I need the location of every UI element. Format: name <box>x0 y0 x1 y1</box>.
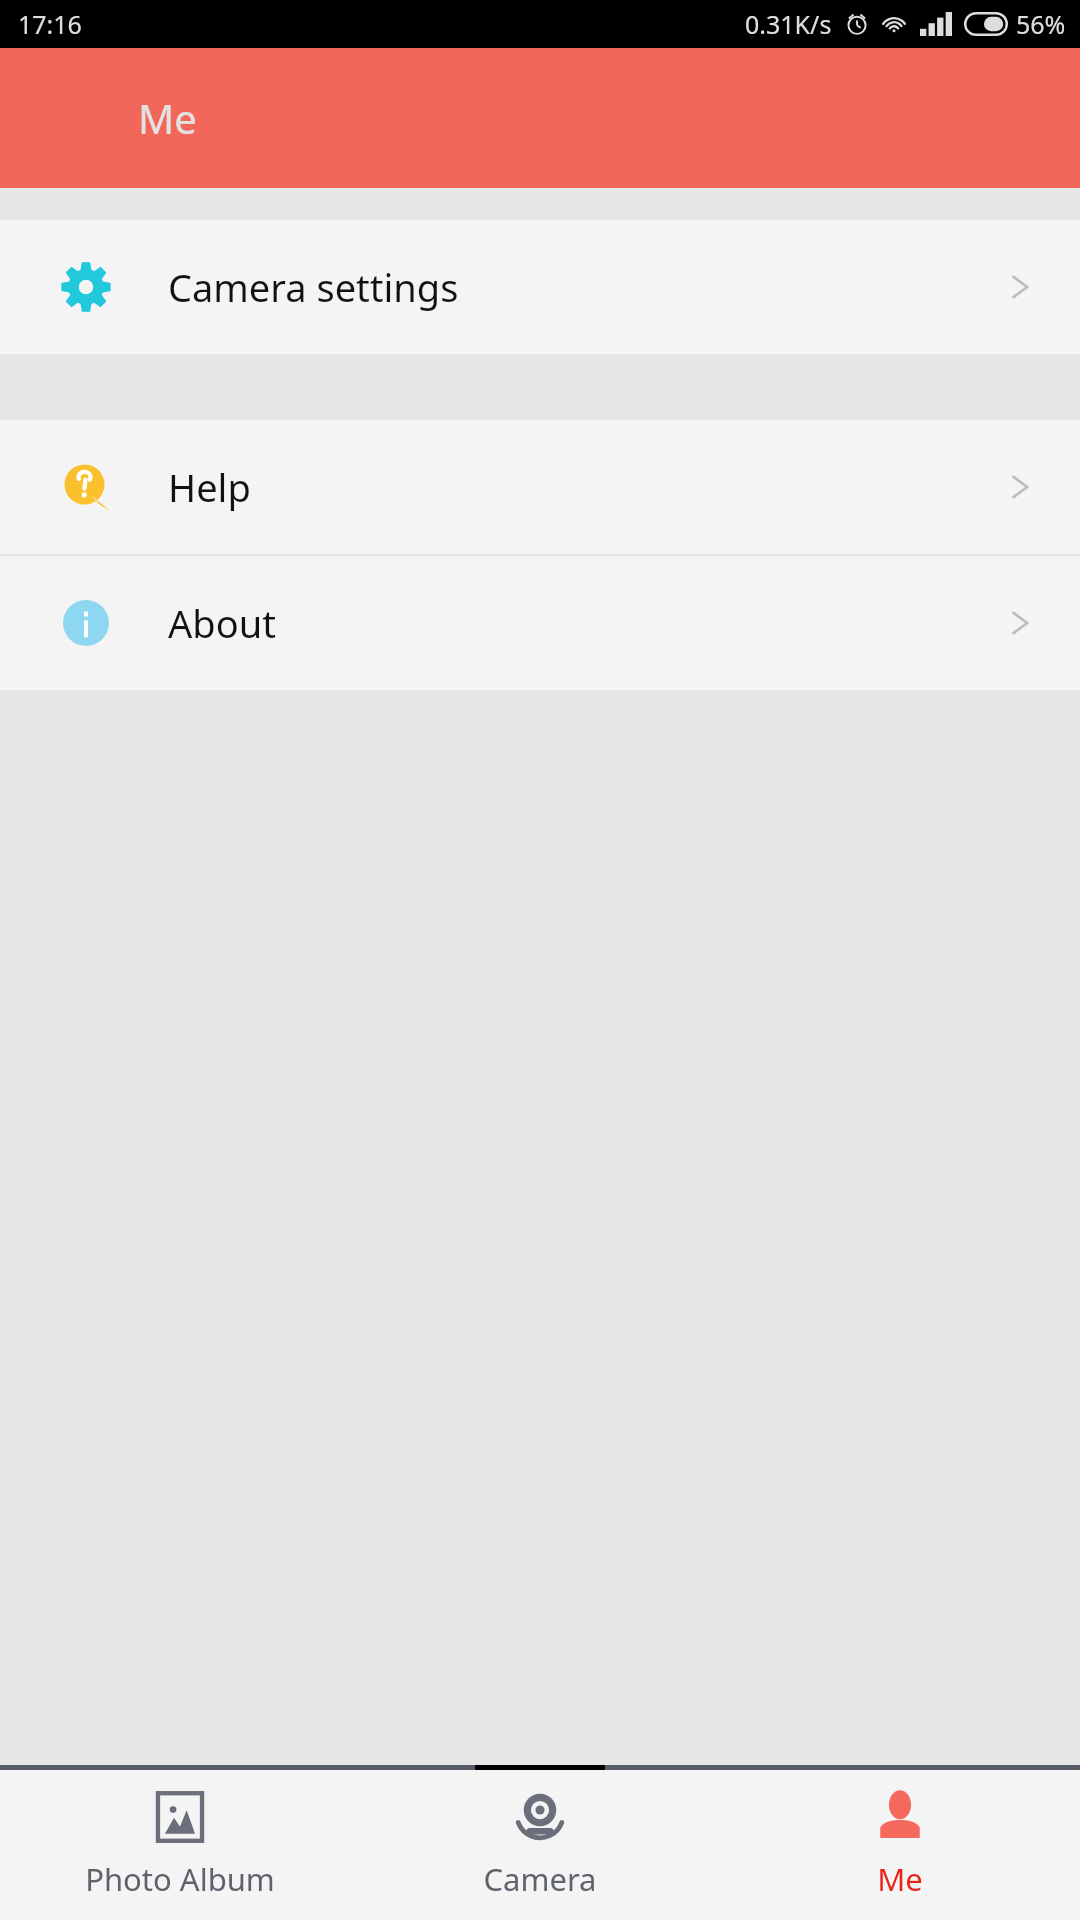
other: Battery <box>964 12 1008 36</box>
button[interactable]: Camera <box>360 1770 720 1920</box>
button[interactable]: Help <box>0 420 1080 554</box>
staticText: Help <box>168 461 251 513</box>
other: Wi-Fi <box>880 10 908 38</box>
button[interactable]: Me <box>720 1770 1080 1920</box>
staticText: About <box>168 597 276 649</box>
staticText: Camera settings <box>168 261 459 313</box>
staticText: Me <box>138 91 197 145</box>
staticText: Camera <box>483 1858 597 1900</box>
staticText: 17:16 <box>18 7 82 41</box>
other: Signal <box>920 12 952 36</box>
staticText: Me <box>877 1858 923 1900</box>
button[interactable]: About <box>0 556 1080 690</box>
staticText: 0.31K/s <box>745 7 832 41</box>
staticText: Photo Album <box>85 1858 275 1900</box>
other: Alarm <box>844 11 870 37</box>
button[interactable]: Camera settings <box>0 220 1080 354</box>
button[interactable]: Photo Album <box>0 1770 360 1920</box>
staticText: 56% <box>1016 7 1066 41</box>
